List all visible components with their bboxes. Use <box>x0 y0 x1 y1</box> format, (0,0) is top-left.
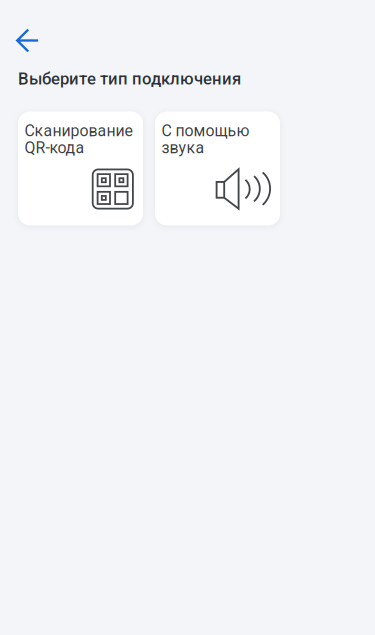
staticText: Сканирование <box>25 121 133 140</box>
staticText: звука <box>162 138 205 157</box>
staticText: QR-кода <box>25 138 85 157</box>
staticText: Выберите тип подключения <box>18 69 241 88</box>
button[interactable]: Сканирование <box>18 111 143 225</box>
button[interactable]: Back <box>0 0 53 64</box>
button[interactable]: С помощью <box>155 111 280 225</box>
staticText: С помощью <box>162 121 250 140</box>
